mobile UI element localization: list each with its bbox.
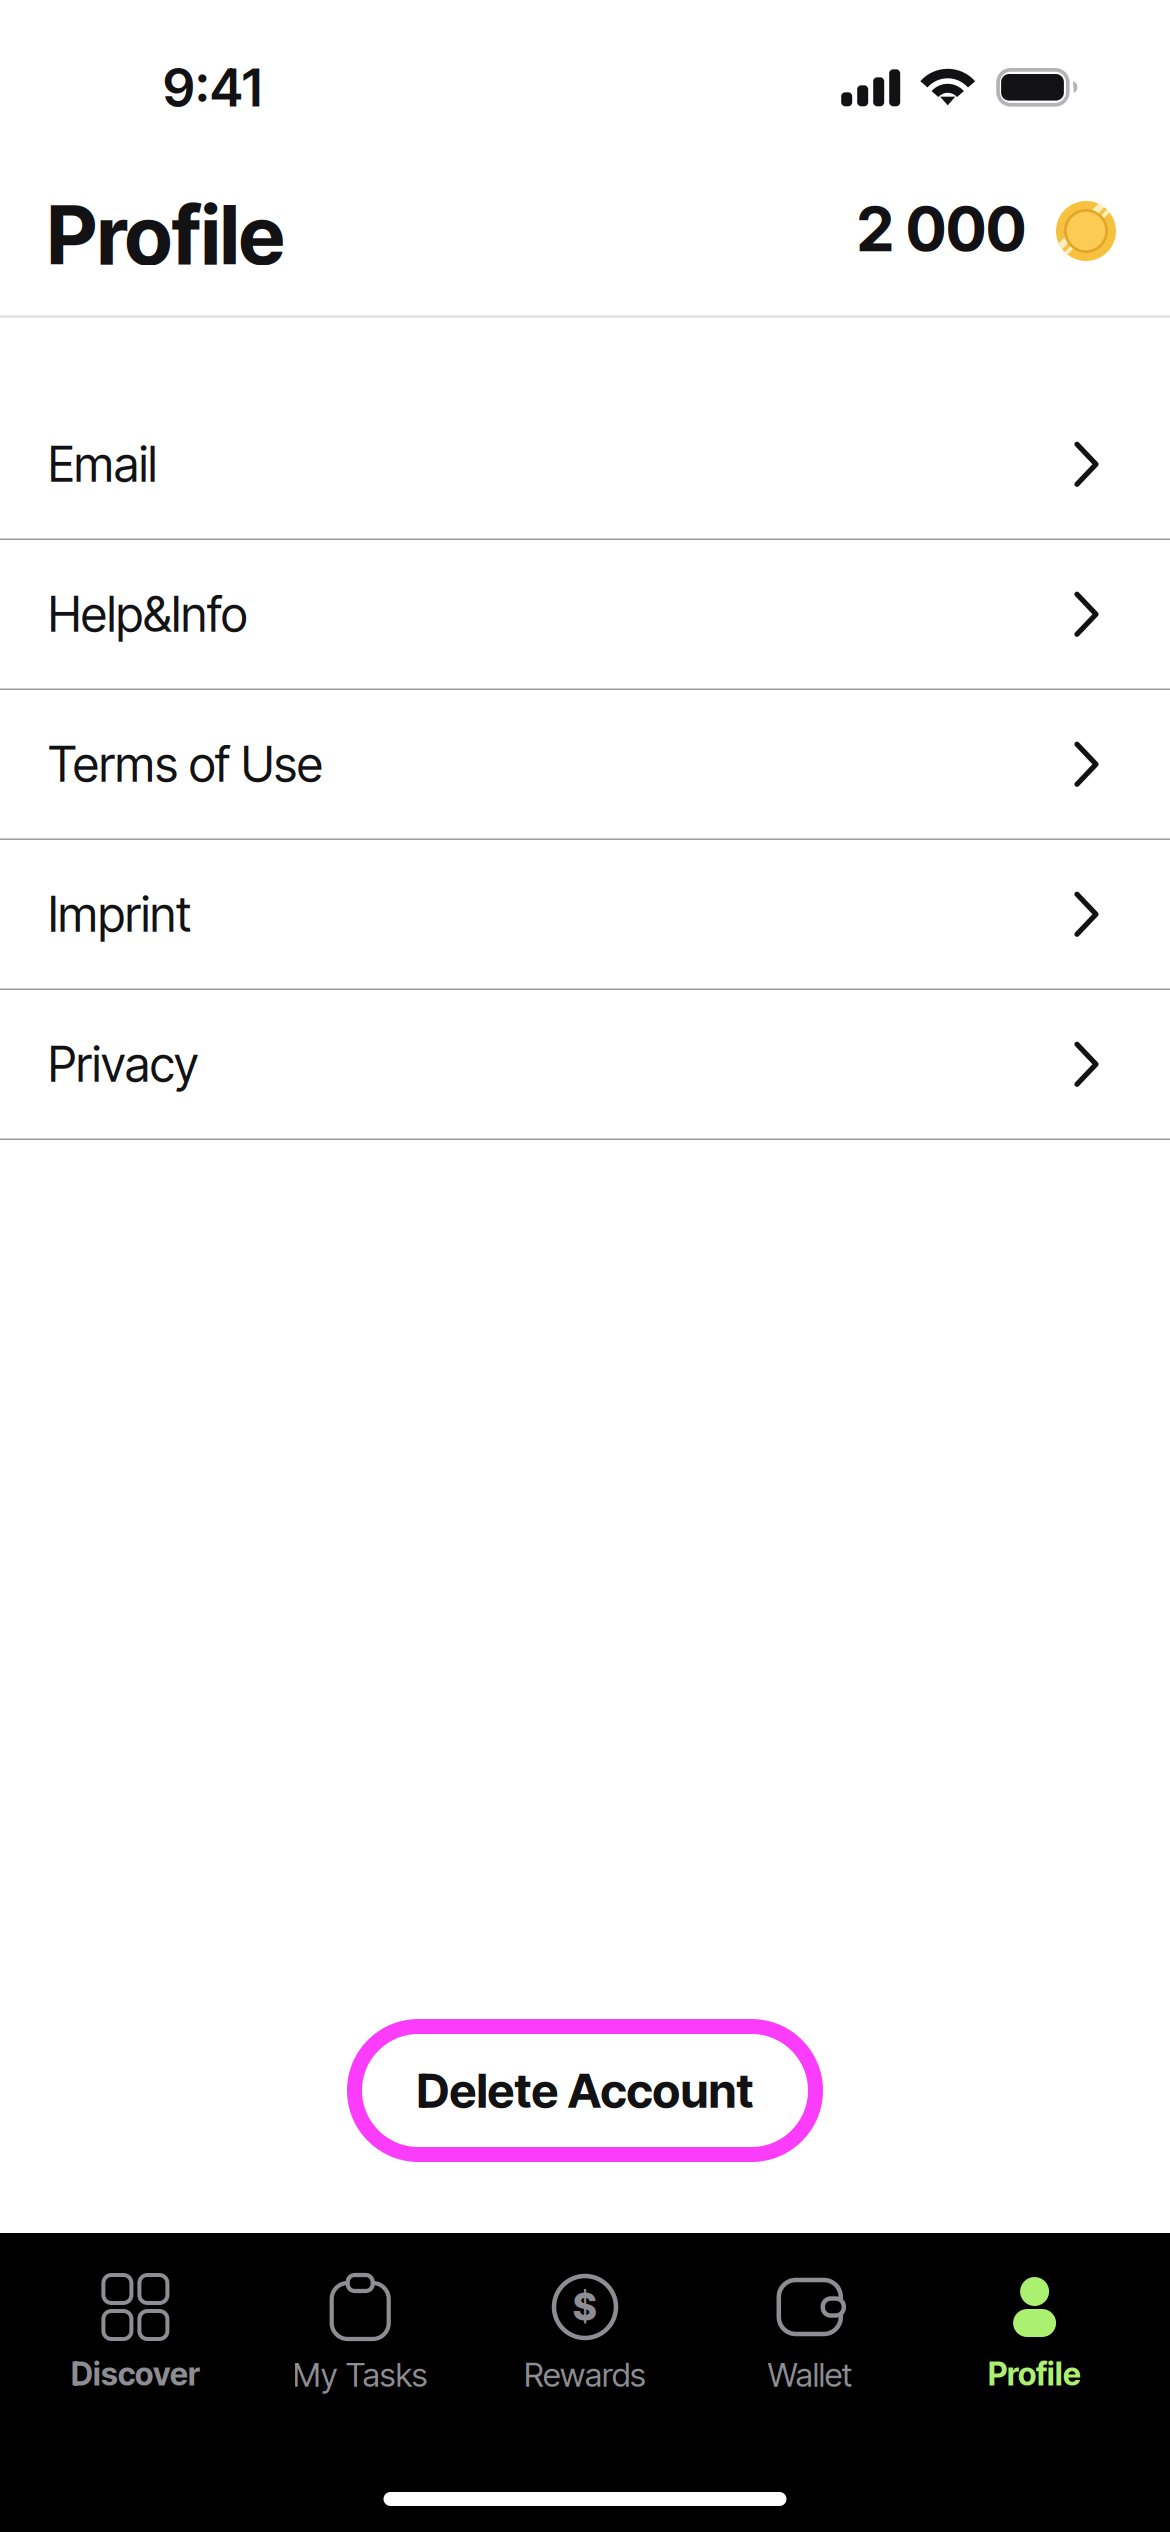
staticText: 2 000 xyxy=(857,192,1026,266)
staticText: Rewards xyxy=(524,2355,646,2395)
staticText: $ xyxy=(573,2284,597,2330)
button[interactable]: Privacy xyxy=(0,990,1170,1140)
staticText: Imprint xyxy=(48,885,191,943)
staticText: Profile xyxy=(47,186,284,284)
button[interactable]: Email xyxy=(0,390,1170,540)
staticText: Wallet xyxy=(768,2355,852,2395)
staticText: Delete Account xyxy=(416,2062,753,2119)
staticText: Help&Info xyxy=(48,585,247,643)
staticText: 9:41 xyxy=(163,56,262,119)
button[interactable]: $ xyxy=(473,2275,697,2463)
button[interactable]: Imprint xyxy=(0,840,1170,990)
staticText: Profile xyxy=(988,2355,1081,2393)
staticText: Privacy xyxy=(48,1035,198,1093)
staticText: Terms of Use xyxy=(48,735,323,793)
button[interactable]: Terms of Use xyxy=(0,690,1170,840)
button[interactable]: Wallet xyxy=(697,2275,922,2463)
button[interactable]: My Tasks xyxy=(248,2275,473,2463)
button[interactable]: Delete Account xyxy=(347,2019,823,2162)
staticText: Email xyxy=(48,435,157,493)
button[interactable]: Help&Info xyxy=(0,540,1170,690)
staticText: Discover xyxy=(71,2355,200,2393)
staticText: My Tasks xyxy=(293,2355,428,2395)
button[interactable]: Discover xyxy=(23,2275,248,2463)
button[interactable]: Profile xyxy=(922,2275,1147,2463)
